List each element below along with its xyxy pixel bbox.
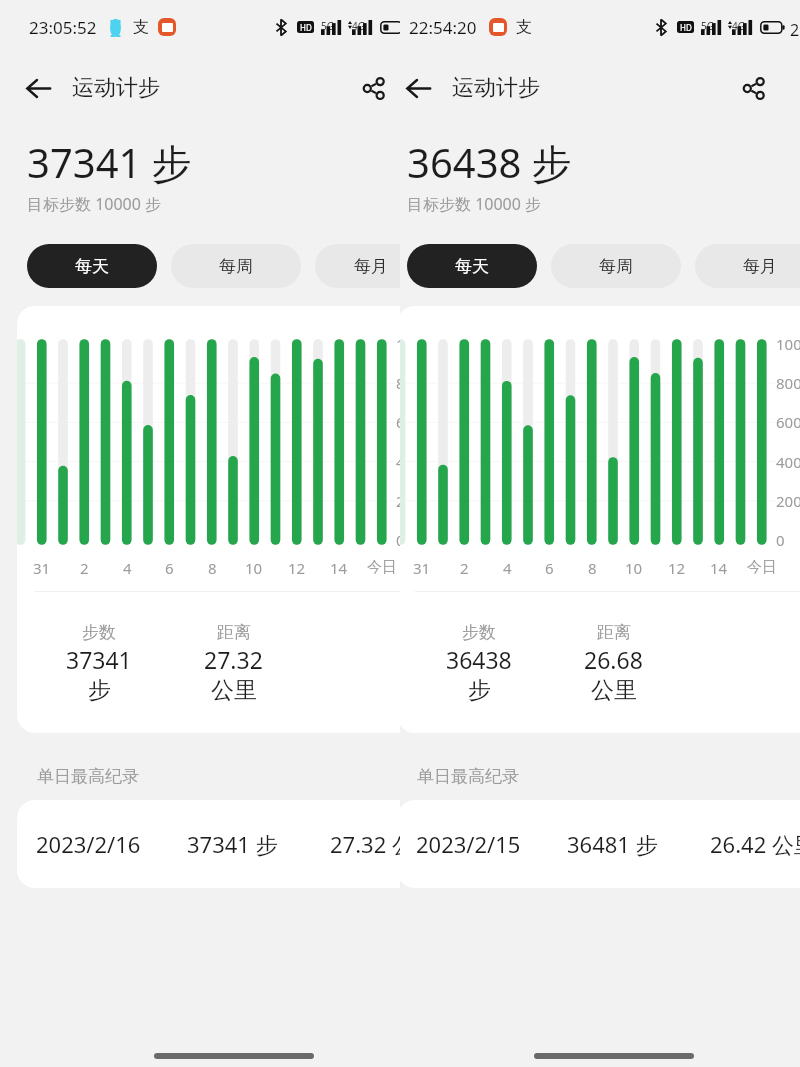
button[interactable]: Back (16, 66, 61, 111)
staticText: 支 (133, 17, 149, 37)
staticText: 1000 (776, 334, 800, 354)
staticText: 36481 步 (567, 829, 658, 859)
staticText: 26.42 公里 (710, 829, 800, 859)
staticText: 31 (33, 558, 51, 578)
staticText: 每天 (455, 256, 489, 277)
button[interactable]: Share (351, 66, 396, 111)
staticText: 4G (732, 19, 745, 33)
staticText: 8 (588, 558, 597, 578)
button[interactable]: 每周 (171, 244, 301, 288)
staticText: 600 (396, 412, 400, 432)
button[interactable]: 每周 (551, 244, 681, 288)
staticText: 距离 (217, 622, 251, 643)
button[interactable]: Back (396, 66, 441, 111)
staticText: 运动计步 (72, 74, 160, 102)
staticText: 今日 (747, 558, 777, 577)
staticText: 22:54:20 (409, 16, 477, 39)
staticText: 800 (396, 373, 400, 393)
button[interactable]: 每月 (695, 244, 800, 288)
staticText: 400 (396, 452, 400, 472)
staticText: 每天 (75, 256, 109, 277)
staticText: 27.32 (204, 644, 263, 675)
staticText: 支 (516, 17, 532, 37)
staticText: 12 (288, 558, 306, 578)
button[interactable]: 2023/2/16 (17, 800, 400, 888)
staticText: 步 (88, 676, 111, 705)
staticText: 2 (80, 558, 89, 578)
button[interactable]: 每月 (315, 244, 400, 288)
staticText: 5G (321, 19, 334, 33)
staticText: 公里 (591, 676, 637, 705)
staticText: 37341 (66, 644, 132, 675)
staticText: 2 (460, 558, 469, 578)
staticText: 23:05:52 (29, 16, 97, 39)
staticText: 单日最高纪录 (417, 766, 519, 787)
staticText: 1000 (396, 334, 400, 354)
staticText: 2023/2/15 (416, 829, 521, 859)
staticText: 200 (396, 491, 400, 511)
staticText: 每周 (219, 256, 253, 277)
staticText: 26.68 (584, 644, 643, 675)
staticText: 14 (330, 558, 348, 578)
staticText: 目标步数 10000 步 (407, 193, 542, 215)
staticText: 31 (413, 558, 431, 578)
staticText: 每周 (599, 256, 633, 277)
staticText: 800 (776, 373, 800, 393)
staticText: 每月 (354, 256, 388, 277)
staticText: 21 (790, 19, 800, 39)
staticText: 单日最高纪录 (37, 766, 139, 787)
staticText: 今日 (367, 558, 397, 577)
button[interactable]: 2023/2/15 (397, 800, 800, 888)
button[interactable]: 每天 (407, 244, 537, 288)
staticText: 0 (776, 530, 785, 550)
staticText: 4 (123, 558, 132, 578)
staticText: HD (680, 22, 692, 33)
staticText: 200 (776, 491, 800, 511)
staticText: 步数 (82, 622, 116, 643)
staticText: 步数 (462, 622, 496, 643)
staticText: 4G (352, 19, 365, 33)
staticText: 10 (625, 558, 643, 578)
staticText: 目标步数 10000 步 (27, 193, 162, 215)
staticText: 步 (468, 676, 491, 705)
staticText: 6 (545, 558, 554, 578)
staticText: 公里 (211, 676, 257, 705)
staticText: 运动计步 (452, 74, 540, 102)
staticText: 36438 步 (407, 135, 572, 190)
staticText: HD (300, 22, 312, 33)
staticText: 每月 (743, 256, 777, 277)
staticText: 36438 (446, 644, 512, 675)
staticText: 14 (710, 558, 728, 578)
staticText: 6 (165, 558, 174, 578)
staticText: 10 (245, 558, 263, 578)
staticText: 37341 步 (27, 135, 192, 190)
staticText: 8 (208, 558, 217, 578)
staticText: 距离 (597, 622, 631, 643)
staticText: 4 (503, 558, 512, 578)
staticText: 0 (396, 530, 400, 550)
staticText: 2023/2/16 (36, 829, 141, 859)
button[interactable]: 每天 (27, 244, 157, 288)
staticText: 12 (668, 558, 686, 578)
staticText: 400 (776, 452, 800, 472)
staticText: 27.32 公里 (330, 829, 400, 859)
staticText: 5G (701, 19, 714, 33)
button[interactable]: Share (731, 66, 776, 111)
staticText: 600 (776, 412, 800, 432)
staticText: 37341 步 (187, 829, 278, 859)
